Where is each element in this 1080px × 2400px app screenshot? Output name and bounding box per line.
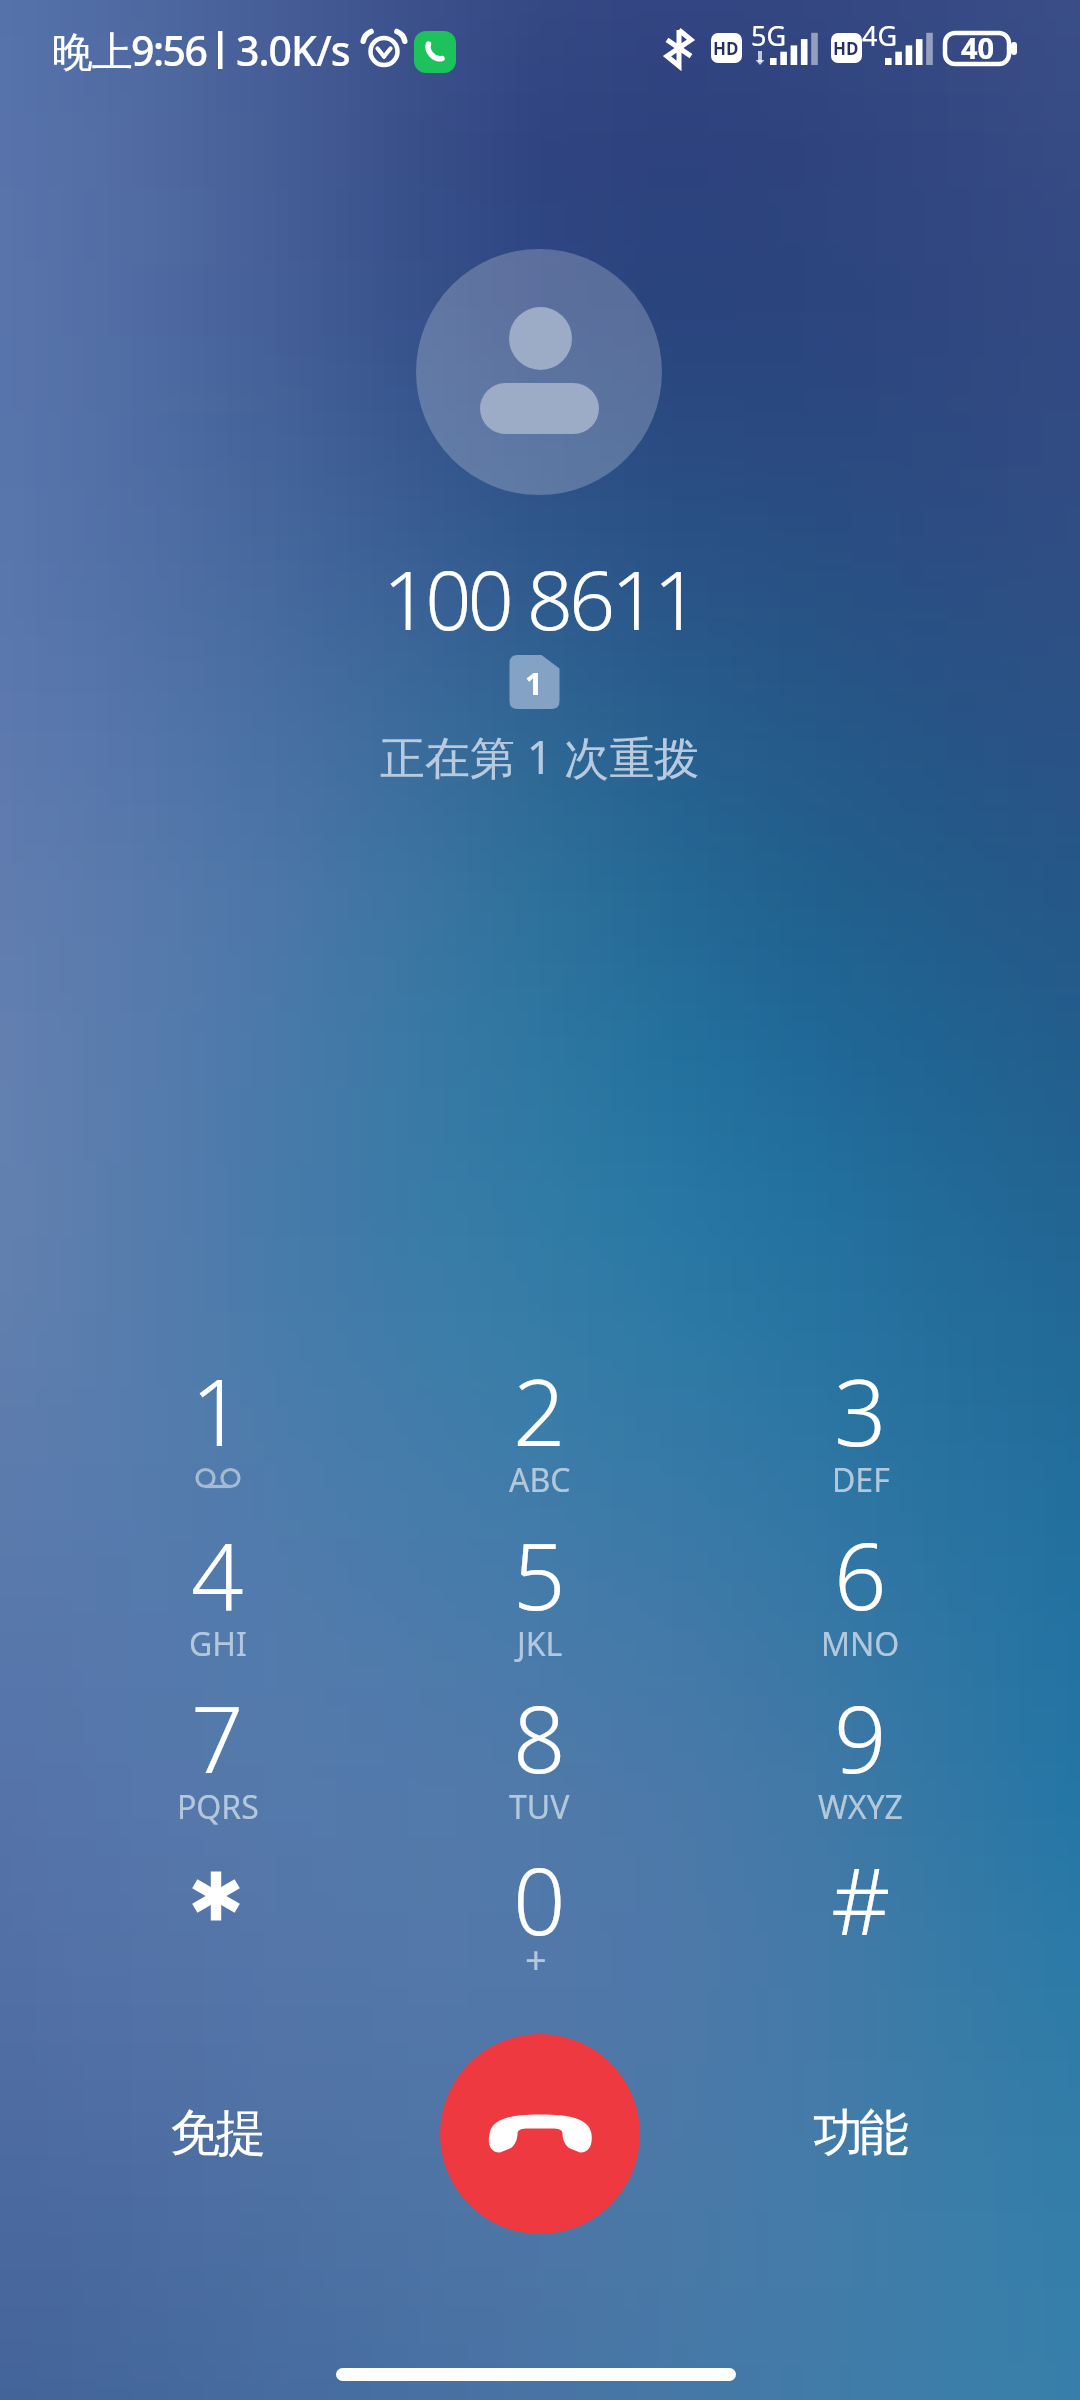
staticText: 4 — [191, 1512, 244, 1637]
staticText: 免提 — [172, 2102, 264, 2165]
staticText: HD — [833, 37, 859, 60]
staticText: 1 — [191, 1348, 244, 1473]
staticText: 6 — [834, 1512, 887, 1637]
staticText: 3 — [834, 1348, 887, 1473]
button[interactable]: 5 — [379, 1518, 701, 1681]
staticText: 晚上9:56 — [52, 22, 207, 78]
button[interactable]: More options — [741, 2054, 981, 2214]
staticText: 功能 — [815, 2102, 907, 2165]
staticText: ABC — [509, 1458, 571, 1502]
staticText: 8 — [513, 1675, 566, 1800]
staticText: 4G — [862, 17, 898, 54]
button[interactable]: 0 — [379, 1843, 701, 2006]
staticText: 2 — [513, 1348, 566, 1473]
staticText: 0 — [513, 1837, 566, 1962]
staticText: JKL — [517, 1622, 563, 1666]
button[interactable]: 2 — [379, 1354, 701, 1517]
button[interactable]: Speaker — [98, 2054, 338, 2214]
staticText: MNO — [821, 1622, 900, 1666]
staticText: 5 — [513, 1512, 566, 1637]
button[interactable]: 8 — [379, 1681, 701, 1844]
staticText: + — [525, 1933, 547, 1985]
button[interactable]: End call — [440, 2034, 640, 2234]
staticText: TUV — [509, 1785, 570, 1829]
button[interactable]: Star — [57, 1843, 379, 2006]
staticText: HD — [713, 37, 739, 60]
staticText: 7 — [191, 1675, 244, 1800]
button[interactable]: 9 — [700, 1681, 1022, 1844]
staticText: 9 — [834, 1675, 887, 1800]
staticText: # — [831, 1837, 891, 1962]
button[interactable]: 1 — [57, 1354, 379, 1517]
staticText: GHI — [189, 1622, 247, 1666]
staticText: DEF — [832, 1458, 890, 1502]
staticText: 40 — [961, 28, 995, 67]
button[interactable]: Pound — [700, 1843, 1022, 2006]
button[interactable]: 3 — [700, 1354, 1022, 1517]
staticText: 1 — [525, 662, 543, 704]
staticText: PQRS — [177, 1785, 259, 1829]
staticText: 正在第 1 次重拨 — [380, 726, 700, 787]
staticText: 100 8611 — [383, 543, 696, 653]
staticText: 5G — [751, 17, 787, 54]
staticText: 3.0K/s — [236, 22, 350, 78]
staticText: WXYZ — [818, 1785, 903, 1829]
button[interactable]: 6 — [700, 1518, 1022, 1681]
button[interactable]: 4 — [57, 1518, 379, 1681]
button[interactable]: 7 — [57, 1681, 379, 1844]
